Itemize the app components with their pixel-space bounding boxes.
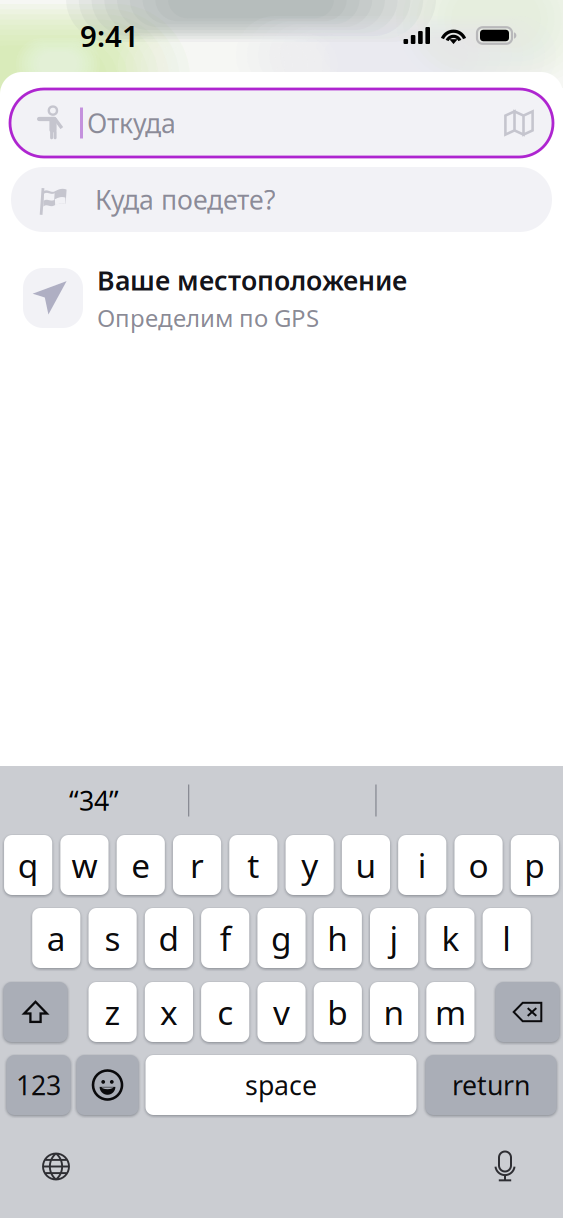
- button[interactable]: Switch keyboard: [30, 1140, 82, 1192]
- button[interactable]: y: [286, 835, 334, 895]
- staticText: p: [524, 843, 545, 887]
- button[interactable]: f: [201, 908, 249, 968]
- staticText: e: [131, 843, 150, 887]
- staticText: a: [47, 916, 66, 960]
- button[interactable]: Ваше местоположение: [23, 268, 543, 328]
- staticText: 9:41: [80, 16, 139, 55]
- staticText: Определим по GPS: [97, 302, 319, 334]
- button[interactable]: k: [426, 908, 474, 968]
- button[interactable]: a: [32, 908, 80, 968]
- button[interactable]: Куда поедете?: [11, 167, 552, 232]
- staticText: o: [469, 843, 489, 887]
- staticText: return: [452, 1067, 530, 1103]
- button[interactable]: e: [117, 835, 165, 895]
- button[interactable]: s: [88, 908, 137, 968]
- staticText: Ваше местоположение: [97, 262, 407, 298]
- staticText: 123: [16, 1067, 61, 1103]
- staticText: m: [435, 990, 466, 1034]
- button[interactable]: b: [314, 982, 362, 1042]
- button[interactable]: Shift: [3, 982, 67, 1042]
- staticText: Куда поедете?: [95, 182, 276, 217]
- button[interactable]: space: [145, 1055, 416, 1115]
- staticText: c: [217, 990, 233, 1034]
- staticText: q: [18, 843, 39, 887]
- button[interactable]: x: [145, 982, 193, 1042]
- staticText: “34”: [69, 783, 119, 818]
- staticText: i: [418, 843, 427, 887]
- button[interactable]: Emoji: [76, 1055, 138, 1115]
- staticText: n: [384, 990, 405, 1034]
- staticText: space: [245, 1067, 317, 1103]
- button[interactable]: d: [145, 908, 193, 968]
- button[interactable]: i: [398, 835, 446, 895]
- staticText: k: [441, 916, 459, 960]
- button[interactable]: Dictate: [479, 1140, 531, 1192]
- staticText: g: [271, 916, 292, 960]
- button[interactable]: t: [229, 835, 277, 895]
- staticText: w: [71, 843, 97, 887]
- staticText: s: [105, 916, 121, 960]
- button[interactable]: w: [60, 835, 109, 895]
- button[interactable]: j: [370, 908, 418, 968]
- staticText: b: [327, 990, 348, 1034]
- button[interactable]: return: [425, 1055, 556, 1115]
- staticText: v: [273, 990, 290, 1034]
- button[interactable]: m: [426, 982, 474, 1042]
- staticText: u: [355, 843, 376, 887]
- staticText: f: [220, 916, 231, 960]
- staticText: h: [327, 916, 348, 960]
- button[interactable]: Delete: [495, 982, 559, 1042]
- staticText: y: [301, 843, 318, 887]
- staticText: z: [105, 990, 121, 1034]
- staticText: d: [158, 916, 179, 960]
- staticText: r: [190, 843, 204, 887]
- staticText: l: [502, 916, 511, 960]
- button[interactable]: Откуда: [10, 89, 553, 157]
- button[interactable]: p: [511, 835, 559, 895]
- button[interactable]: g: [257, 908, 306, 968]
- button[interactable]: r: [173, 835, 221, 895]
- button[interactable]: 123: [6, 1055, 70, 1115]
- button[interactable]: c: [201, 982, 249, 1042]
- button[interactable]: z: [88, 982, 137, 1042]
- staticText: j: [390, 916, 399, 960]
- staticText: Откуда: [87, 105, 176, 141]
- staticText: x: [160, 990, 178, 1034]
- button[interactable]: h: [314, 908, 362, 968]
- staticText: t: [247, 843, 259, 887]
- button[interactable]: v: [257, 982, 306, 1042]
- button[interactable]: o: [454, 835, 503, 895]
- button[interactable]: u: [342, 835, 390, 895]
- button[interactable]: l: [483, 908, 531, 968]
- button[interactable]: n: [370, 982, 418, 1042]
- button[interactable]: q: [4, 835, 52, 895]
